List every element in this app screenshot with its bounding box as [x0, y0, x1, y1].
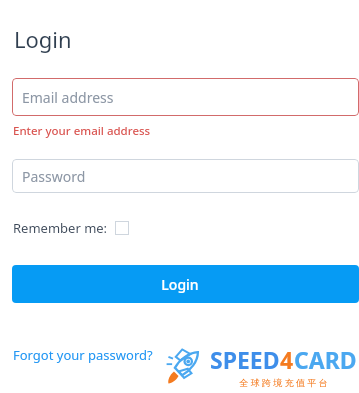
- button[interactable]: Login: [12, 265, 359, 303]
- staticText: Password: [22, 167, 86, 186]
- staticText: Enter your email address: [13, 123, 151, 139]
- staticText: Remember me:: [13, 219, 108, 237]
- staticText: 全 球 跨 境 充 值 平 台: [239, 376, 328, 388]
- staticText: Email address: [22, 88, 114, 107]
- button[interactable]: Remember me:: [13, 219, 129, 237]
- staticText: SPEED: [210, 344, 280, 375]
- staticText: 4: [280, 344, 294, 375]
- staticText: Login: [14, 24, 72, 54]
- staticText: Login: [161, 275, 199, 294]
- staticText: Forgot your password?: [13, 346, 153, 364]
- button[interactable]: Forgot your password?: [13, 346, 153, 364]
- staticText: CARD: [294, 344, 357, 375]
- button[interactable]: Password: [12, 159, 359, 193]
- button[interactable]: Email address: [12, 78, 359, 116]
